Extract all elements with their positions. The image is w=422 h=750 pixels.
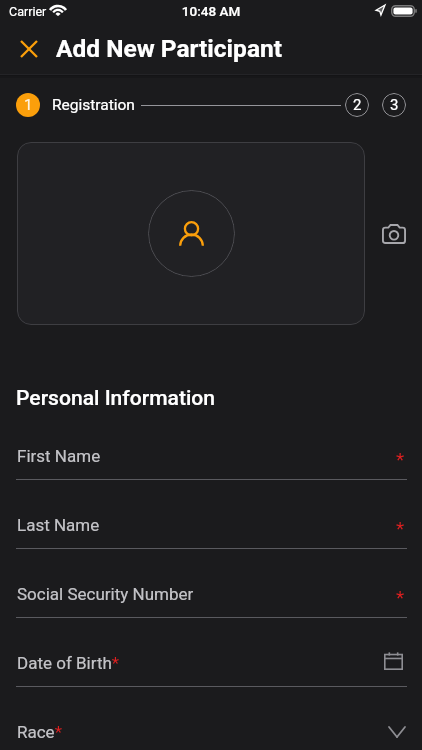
staticText: Carrier	[9, 4, 47, 19]
button[interactable]: Date of Birth*	[0, 632, 422, 686]
button[interactable]: 2	[345, 93, 369, 117]
staticText: Personal Information	[16, 385, 216, 410]
button[interactable]: 1	[16, 93, 40, 117]
button[interactable]: Social Security Number	[0, 563, 422, 617]
staticText: First Name	[17, 446, 101, 466]
staticText: 10:48 AM	[0, 3, 422, 19]
staticText: Add New Participant	[56, 34, 283, 63]
staticText: 3	[390, 96, 399, 114]
staticText: Race*	[17, 722, 62, 742]
button[interactable]: 3	[382, 93, 406, 117]
button[interactable]: Add participant photo	[17, 142, 365, 325]
staticText: Last Name	[17, 515, 100, 535]
button[interactable]: Take photo	[377, 217, 410, 250]
staticText: Social Security Number	[17, 584, 194, 604]
button[interactable]: Race*	[0, 701, 422, 750]
staticText: Date of Birth*	[17, 653, 120, 673]
staticText: *	[396, 586, 405, 608]
staticText: *	[396, 448, 405, 470]
button[interactable]: First Name	[0, 425, 422, 479]
staticText: 1	[24, 96, 33, 114]
button[interactable]: Close	[12, 32, 45, 65]
staticText: Registration	[52, 96, 135, 114]
staticText: 2	[353, 96, 362, 114]
staticText: *	[396, 517, 405, 539]
button[interactable]: Last Name	[0, 494, 422, 548]
